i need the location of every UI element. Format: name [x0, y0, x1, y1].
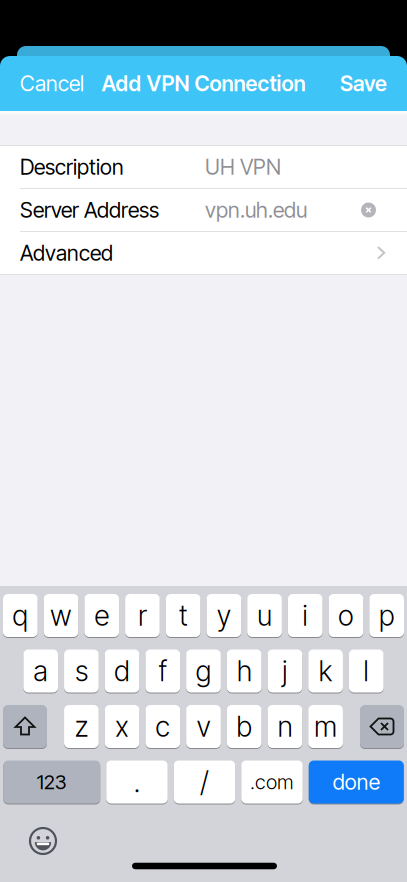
staticText: Save: [340, 71, 387, 96]
button[interactable]: z: [64, 705, 99, 748]
staticText: e: [94, 599, 109, 632]
staticText: h: [237, 654, 252, 687]
button[interactable]: o: [329, 594, 363, 637]
button[interactable]: d: [105, 649, 139, 692]
button[interactable]: Delete: [360, 705, 404, 748]
staticText: done: [333, 769, 380, 795]
button[interactable]: x: [105, 705, 139, 748]
staticText: .com: [250, 770, 294, 794]
button[interactable]: Emoji: [29, 827, 57, 855]
button[interactable]: t: [166, 594, 200, 637]
staticText: UH VPN: [205, 154, 281, 180]
staticText: c: [155, 710, 170, 743]
staticText: Add VPN Connection: [101, 71, 305, 96]
button[interactable]: f: [145, 649, 180, 692]
button[interactable]: m: [308, 705, 343, 748]
button[interactable]: b: [227, 705, 262, 748]
staticText: /: [200, 765, 209, 798]
button[interactable]: i: [288, 594, 323, 637]
button[interactable]: e: [84, 594, 119, 637]
staticText: y: [217, 599, 231, 632]
staticText: i: [302, 599, 308, 632]
button[interactable]: c: [145, 705, 180, 748]
button[interactable]: h: [227, 649, 262, 692]
staticText: f: [158, 654, 167, 687]
staticText: n: [277, 710, 292, 743]
button[interactable]: k: [308, 649, 343, 692]
staticText: Server Address: [20, 197, 159, 223]
staticText: 123: [37, 770, 67, 794]
button[interactable]: s: [64, 649, 99, 692]
staticText: r: [138, 599, 147, 632]
button[interactable]: 123: [3, 760, 100, 803]
button[interactable]: a: [23, 649, 58, 692]
button[interactable]: j: [268, 649, 302, 692]
button[interactable]: .com: [241, 760, 303, 803]
staticText: Description: [20, 154, 124, 180]
button[interactable]: Save: [340, 71, 387, 96]
staticText: o: [338, 599, 354, 632]
button[interactable]: n: [268, 705, 302, 748]
staticText: t: [179, 599, 188, 632]
staticText: v: [196, 710, 210, 743]
staticText: a: [33, 654, 48, 687]
staticText: x: [115, 710, 129, 743]
staticText: l: [363, 654, 369, 687]
staticText: w: [50, 599, 72, 632]
button[interactable]: g: [186, 649, 221, 692]
button[interactable]: y: [206, 594, 241, 637]
button[interactable]: l: [349, 649, 384, 692]
button[interactable]: done: [309, 760, 404, 803]
staticText: g: [195, 654, 211, 687]
staticText: b: [236, 710, 252, 743]
button[interactable]: Cancel: [20, 71, 84, 96]
button[interactable]: p: [369, 594, 404, 637]
staticText: q: [12, 599, 28, 632]
button[interactable]: r: [125, 594, 160, 637]
staticText: vpn.uh.edu: [205, 197, 307, 223]
button[interactable]: u: [247, 594, 282, 637]
button[interactable]: q: [3, 594, 38, 637]
staticText: .: [133, 765, 140, 798]
staticText: Cancel: [20, 71, 84, 96]
staticText: z: [74, 710, 88, 743]
button[interactable]: Clear text: [361, 202, 376, 217]
staticText: Advanced: [20, 240, 113, 266]
button[interactable]: Description: [0, 146, 407, 188]
button[interactable]: /: [174, 760, 235, 803]
staticText: d: [114, 654, 130, 687]
staticText: u: [257, 599, 272, 632]
button[interactable]: Shift: [3, 705, 47, 748]
staticText: m: [314, 710, 337, 743]
staticText: k: [319, 654, 333, 687]
button[interactable]: .: [106, 760, 168, 803]
button[interactable]: Server Address: [0, 189, 407, 231]
staticText: j: [282, 654, 288, 687]
button[interactable]: w: [44, 594, 78, 637]
staticText: p: [379, 599, 395, 632]
button[interactable]: v: [186, 705, 221, 748]
button[interactable]: Advanced: [0, 232, 407, 274]
staticText: s: [75, 654, 88, 687]
